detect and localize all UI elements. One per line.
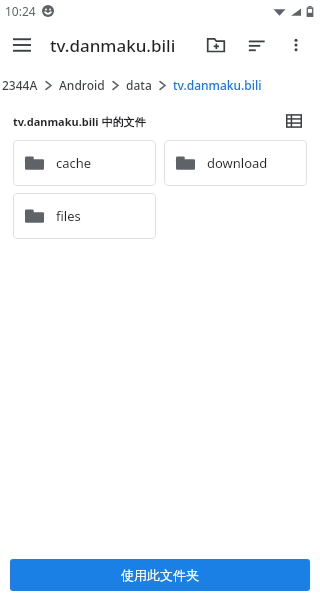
- button[interactable]: 使用此文件夹: [10, 559, 310, 591]
- staticText: 使用此文件夹: [121, 567, 199, 583]
- button[interactable]: cache: [13, 140, 156, 186]
- staticText: 10:24: [5, 3, 36, 19]
- staticText: tv.danmaku.bili 中的文件: [13, 114, 278, 129]
- button[interactable]: files: [13, 193, 156, 239]
- button[interactable]: 2344A: [2, 77, 38, 93]
- button[interactable]: data: [126, 77, 152, 93]
- staticText: tv.danmaku.bili: [50, 34, 196, 57]
- staticText: files: [56, 207, 81, 225]
- button[interactable]: download: [164, 140, 307, 186]
- staticText: cache: [56, 154, 92, 172]
- button[interactable]: View type: [278, 105, 310, 137]
- button[interactable]: Android: [59, 77, 105, 93]
- staticText: download: [207, 154, 268, 172]
- button[interactable]: More options: [276, 25, 316, 65]
- button[interactable]: New folder: [196, 25, 236, 65]
- button[interactable]: Show roots: [0, 23, 44, 67]
- button[interactable]: Sort: [236, 25, 276, 65]
- button[interactable]: tv.danmaku.bili: [173, 77, 262, 93]
